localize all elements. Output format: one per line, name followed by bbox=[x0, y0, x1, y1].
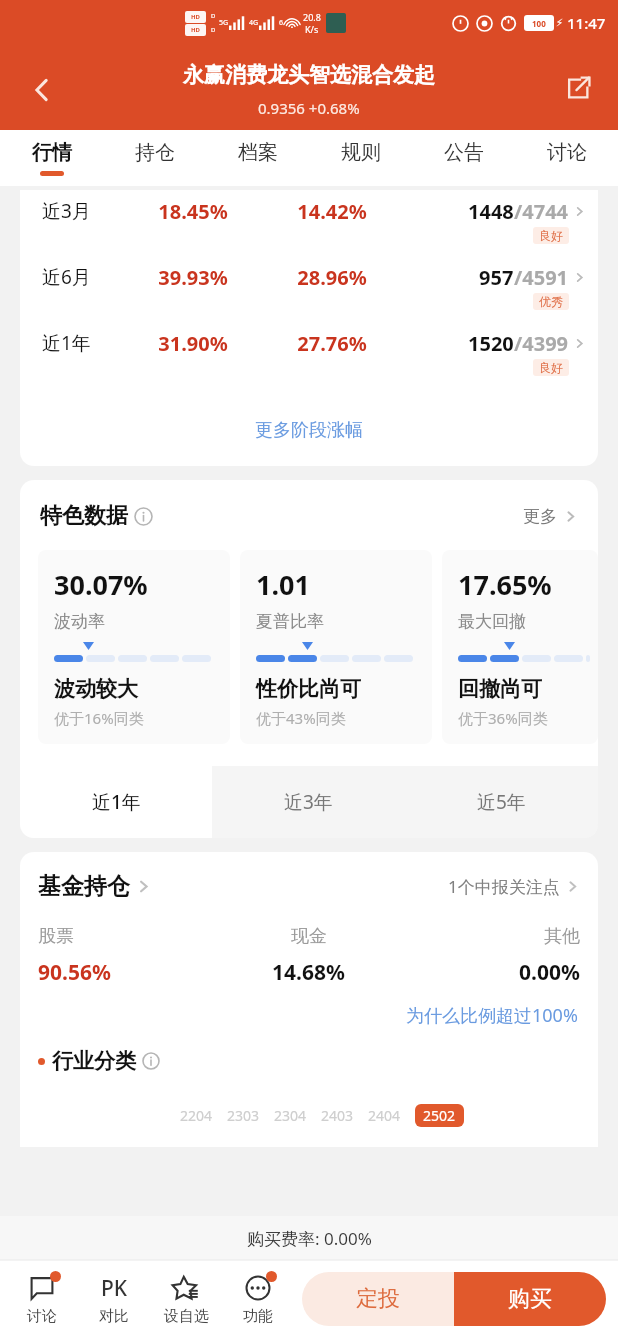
button[interactable]: 1.01 bbox=[240, 550, 432, 744]
button[interactable]: 更多阶段涨幅 bbox=[20, 406, 598, 454]
staticText: 良好 bbox=[539, 360, 563, 375]
button[interactable]: 30.07% bbox=[38, 550, 230, 744]
button[interactable]: 档案 bbox=[206, 130, 309, 171]
staticText: HD bbox=[191, 26, 200, 34]
staticText: 17.65% bbox=[458, 566, 552, 603]
staticText: 现金 bbox=[291, 925, 327, 948]
staticText: 2204 bbox=[180, 1106, 213, 1125]
staticText: 18.45% bbox=[134, 198, 252, 225]
button[interactable]: PK bbox=[78, 1260, 150, 1338]
staticText: 31.90% bbox=[134, 330, 252, 357]
staticText: 优于16%同类 bbox=[54, 708, 144, 728]
staticText: /4591 bbox=[514, 264, 569, 291]
staticText: 波动较大 bbox=[54, 676, 138, 702]
staticText: 良好 bbox=[539, 228, 563, 243]
staticText: 2303 bbox=[227, 1106, 260, 1125]
staticText: 14.42% bbox=[276, 198, 388, 225]
staticText: 讨论 bbox=[27, 1307, 57, 1326]
button[interactable]: 近3月 bbox=[20, 190, 598, 256]
staticText: 1个中报关注点 bbox=[448, 875, 560, 898]
staticText: 功能 bbox=[243, 1307, 273, 1326]
button[interactable]: Share bbox=[552, 62, 604, 114]
staticText: 957 bbox=[479, 264, 514, 291]
button[interactable]: 规则 bbox=[309, 130, 412, 171]
staticText: 更多 bbox=[523, 506, 557, 527]
staticText: 优秀 bbox=[539, 294, 563, 309]
staticText: 回撤尚可 bbox=[458, 676, 542, 702]
staticText: 购买 bbox=[508, 1285, 552, 1313]
staticText: 2304 bbox=[274, 1106, 307, 1125]
staticText: 近5年 bbox=[477, 789, 526, 815]
button[interactable]: 公告 bbox=[412, 130, 515, 171]
staticText: 持仓 bbox=[135, 140, 175, 165]
staticText: 设自选 bbox=[164, 1307, 209, 1326]
staticText: 27.76% bbox=[276, 330, 388, 357]
staticText: 4G bbox=[249, 18, 259, 28]
button[interactable]: 为什么比例超过100% bbox=[406, 1003, 578, 1028]
button[interactable]: 功能 bbox=[222, 1260, 294, 1338]
button[interactable]: 更多 bbox=[523, 506, 578, 527]
staticText: 优于43%同类 bbox=[256, 708, 346, 728]
button[interactable]: 讨论 bbox=[6, 1260, 78, 1338]
staticText: 行业分类 bbox=[52, 1048, 136, 1074]
staticText: /4744 bbox=[514, 198, 569, 225]
button[interactable]: Back bbox=[14, 62, 70, 118]
staticText: 近3月 bbox=[42, 198, 134, 224]
staticText: 0.00% bbox=[519, 958, 580, 987]
staticText: 90.56% bbox=[38, 958, 111, 987]
button[interactable]: 近5年 bbox=[405, 766, 598, 838]
staticText: 39.93% bbox=[134, 264, 252, 291]
staticText: 档案 bbox=[238, 140, 278, 165]
staticText: 0.9356 +0.68% bbox=[258, 98, 360, 118]
staticText: 100 bbox=[532, 18, 546, 29]
staticText: 1520 bbox=[468, 330, 514, 357]
staticText: 近1年 bbox=[92, 789, 141, 815]
staticText: 30.07% bbox=[54, 566, 148, 603]
button[interactable]: 近1年 bbox=[20, 322, 598, 388]
staticText: PK bbox=[101, 1274, 128, 1303]
button[interactable]: 17.65% bbox=[442, 550, 598, 744]
staticText: 特色数据 bbox=[40, 502, 128, 530]
staticText: HD bbox=[191, 13, 200, 21]
staticText: 讨论 bbox=[547, 140, 587, 165]
button[interactable]: 特色数据 bbox=[40, 502, 153, 530]
staticText: 优于36%同类 bbox=[458, 708, 548, 728]
button[interactable]: 近1年 bbox=[20, 766, 212, 838]
staticText: ⚡ bbox=[556, 17, 564, 29]
staticText: 为什么比例超过100% bbox=[406, 1003, 578, 1028]
button[interactable]: 定投 bbox=[302, 1272, 454, 1326]
staticText: 14.68% bbox=[272, 958, 345, 987]
staticText: 28.96% bbox=[276, 264, 388, 291]
staticText: 永赢消费龙头智选混合发起 bbox=[144, 62, 474, 88]
staticText: 2404 bbox=[368, 1106, 401, 1125]
staticText: 规则 bbox=[341, 140, 381, 165]
button[interactable]: 近3年 bbox=[212, 766, 405, 838]
staticText: /4399 bbox=[514, 330, 569, 357]
staticText: D bbox=[211, 26, 216, 34]
staticText: 1448 bbox=[468, 198, 514, 225]
staticText: 公告 bbox=[444, 140, 484, 165]
button[interactable]: 行情 bbox=[0, 130, 103, 176]
staticText: 性价比尚可 bbox=[256, 676, 361, 702]
staticText: 6 bbox=[279, 18, 284, 28]
staticText: 股票 bbox=[38, 925, 74, 948]
staticText: 近6月 bbox=[42, 264, 134, 290]
button[interactable]: 1个中报关注点 bbox=[448, 875, 580, 898]
staticText: 最大回撤 bbox=[458, 611, 526, 632]
button[interactable]: 设自选 bbox=[150, 1260, 222, 1338]
button[interactable]: 基金持仓 bbox=[38, 872, 152, 901]
staticText: 1.01 bbox=[256, 566, 310, 603]
staticText: 行情 bbox=[32, 140, 72, 165]
staticText: 基金持仓 bbox=[38, 872, 130, 901]
button[interactable]: 购买 bbox=[454, 1272, 606, 1326]
staticText: 2403 bbox=[321, 1106, 354, 1125]
staticText: 购买费率: 0.00% bbox=[247, 1227, 372, 1250]
staticText: 5G bbox=[219, 18, 229, 28]
staticText: 20.8 bbox=[303, 11, 321, 23]
button[interactable]: 近6月 bbox=[20, 256, 598, 322]
staticText: K/s bbox=[305, 23, 319, 35]
button[interactable]: 持仓 bbox=[103, 130, 206, 171]
button[interactable]: 讨论 bbox=[515, 130, 618, 171]
staticText: 2502 bbox=[423, 1106, 456, 1125]
staticText: 波动率 bbox=[54, 611, 105, 632]
